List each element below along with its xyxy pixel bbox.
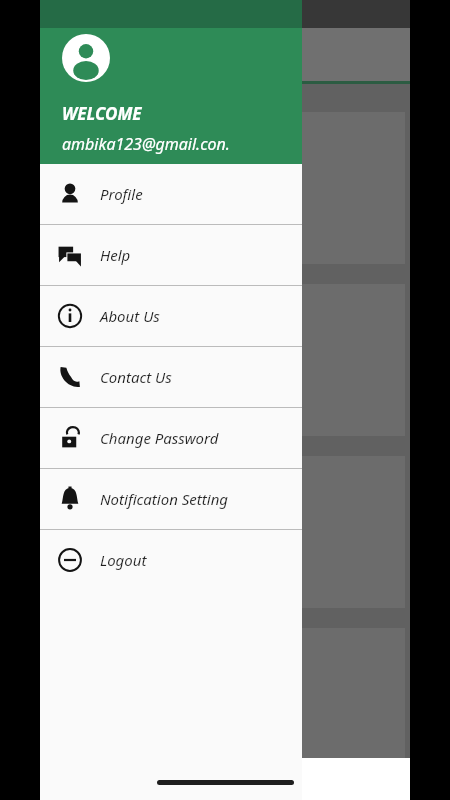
staticText: WELCOME [62,102,142,125]
button[interactable]: Contact Us [40,347,302,407]
staticText: Notification Setting [100,489,228,509]
button[interactable]: Change Password [40,408,302,468]
staticText: Logout [100,550,147,570]
staticText: ambika123@gmail.con. [62,133,230,155]
button[interactable]: About Us [40,286,302,346]
button[interactable]: Help [40,225,302,285]
button[interactable]: Lecture Library [48,628,405,758]
button[interactable]: Notification Setting [40,469,302,529]
staticText: Contact Us [100,367,172,387]
staticText: Notes [60,296,102,318]
staticText: About Us [100,306,160,326]
button[interactable]: Notes [48,284,405,436]
staticText: Change Password [100,428,219,448]
staticText: TimeTable [60,124,133,146]
staticText: Help [100,245,131,265]
staticText: Payment [60,468,124,490]
staticText: Profile [100,184,143,204]
button[interactable]: Profile [40,164,302,224]
button[interactable]: Logout [40,530,302,590]
button[interactable]: TimeTable [48,112,405,264]
button[interactable]: Payment [48,456,405,608]
